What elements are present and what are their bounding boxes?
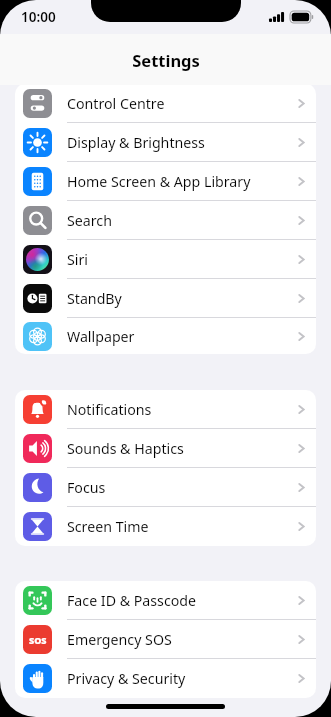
staticText: Sounds & Haptics [67, 439, 296, 458]
staticText: Search [67, 211, 296, 230]
staticText: Emergency SOS [67, 630, 296, 649]
staticText: 10:00 [21, 8, 56, 26]
button[interactable]: Focus [15, 468, 316, 507]
button[interactable]: Display & Brightness [15, 123, 316, 162]
staticText: Settings [132, 49, 200, 71]
button[interactable]: SOS [15, 620, 316, 659]
staticText: Privacy & Security [67, 669, 296, 688]
button[interactable]: Wallpaper [15, 318, 316, 354]
button[interactable]: Notifications [15, 390, 316, 429]
staticText: SOS [29, 634, 47, 646]
staticText: Home Screen & App Library [67, 172, 296, 191]
staticText: Focus [67, 478, 296, 497]
button[interactable]: Face ID & Passcode [15, 581, 316, 620]
button[interactable]: Screen Time [15, 507, 316, 546]
staticText: Face ID & Passcode [67, 591, 296, 610]
button[interactable]: Sounds & Haptics [15, 429, 316, 468]
staticText: Display & Brightness [67, 133, 296, 152]
button[interactable]: Siri [15, 240, 316, 279]
staticText: Wallpaper [67, 327, 296, 346]
staticText: Control Centre [67, 94, 296, 113]
staticText: Screen Time [67, 517, 296, 536]
staticText: Siri [67, 250, 296, 269]
button[interactable]: Search [15, 201, 316, 240]
button[interactable]: Home Screen & App Library [15, 162, 316, 201]
button[interactable]: Privacy & Security [15, 659, 316, 698]
button[interactable]: StandBy [15, 279, 316, 318]
staticText: Notifications [67, 400, 296, 419]
button[interactable]: Control Centre [15, 85, 316, 123]
staticText: StandBy [67, 289, 296, 308]
